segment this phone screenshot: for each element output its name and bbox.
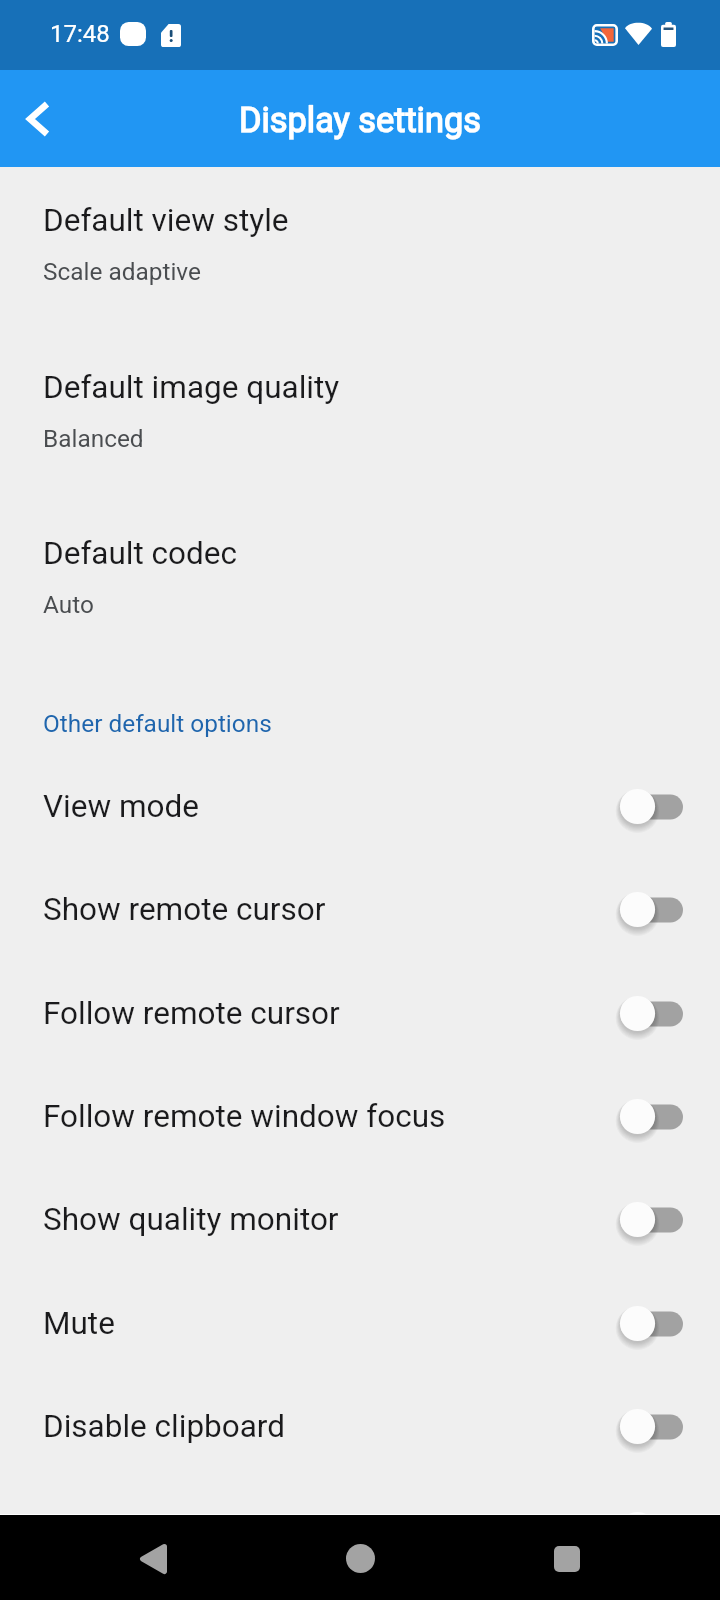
button[interactable]: Default view style xyxy=(0,167,720,334)
button[interactable]: Back xyxy=(111,1515,195,1600)
button[interactable]: Disable clipboard xyxy=(0,1375,720,1478)
staticText: Default codec xyxy=(43,535,238,572)
staticText: Scale adaptive xyxy=(43,257,201,286)
staticText: Other default options xyxy=(43,709,272,738)
button[interactable]: Follow remote cursor xyxy=(0,962,720,1065)
button[interactable]: Mute xyxy=(0,1272,720,1375)
staticText: Show remote cursor xyxy=(43,891,326,928)
button[interactable]: Show quality monitor xyxy=(0,1168,720,1271)
button[interactable]: Default codec xyxy=(0,500,720,667)
staticText: Mute xyxy=(43,1305,115,1342)
button[interactable]: Follow remote window focus xyxy=(0,1065,720,1168)
button[interactable]: Home xyxy=(318,1515,402,1600)
staticText: View mode xyxy=(43,788,199,825)
button[interactable]: Navigate up xyxy=(0,70,76,167)
staticText: Show quality monitor xyxy=(43,1201,339,1238)
button[interactable]: Show remote cursor xyxy=(0,858,720,961)
staticText: Default view style xyxy=(43,202,289,239)
staticText: Balanced xyxy=(43,424,144,453)
staticText: Default image quality xyxy=(43,369,340,406)
staticText: Auto xyxy=(43,590,94,619)
button[interactable]: View mode xyxy=(0,755,720,858)
button[interactable]: Lock screen xyxy=(0,1478,720,1581)
staticText: Disable clipboard xyxy=(43,1408,286,1445)
button[interactable]: Recent apps xyxy=(525,1515,609,1600)
staticText: Follow remote window focus xyxy=(43,1098,446,1135)
staticText: Follow remote cursor xyxy=(43,995,340,1032)
staticText: 17:48 xyxy=(50,20,110,48)
staticText: Display settings xyxy=(239,100,481,140)
button[interactable]: Other default options xyxy=(0,699,720,761)
staticText: Lock screen xyxy=(43,1511,213,1548)
button[interactable]: Default image quality xyxy=(0,334,720,501)
